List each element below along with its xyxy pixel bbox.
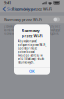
staticText: Zezwalaj na połączenia przez Wi‑Fi, gdy … xyxy=(4,25,60,35)
staticText: Rozmowy przez Wi‑Fi xyxy=(12,6,52,12)
staticText: 9:41 xyxy=(4,0,11,5)
button[interactable]: Rozmowy przez Wi‑Fi xyxy=(0,16,64,23)
staticText: Rozmowy przez Wi‑Fi xyxy=(4,17,42,22)
button[interactable]: OK xyxy=(14,68,50,75)
staticText: OK xyxy=(29,68,35,74)
staticText: Aby wykonywać połączenia przez Wi‑Fi, op… xyxy=(17,40,46,64)
staticText: Rozmowy przez Wi‑Fi xyxy=(21,28,42,38)
staticText: Sieć komórkowa xyxy=(7,6,36,12)
button[interactable]: Sieć komórkowa xyxy=(1,5,37,12)
